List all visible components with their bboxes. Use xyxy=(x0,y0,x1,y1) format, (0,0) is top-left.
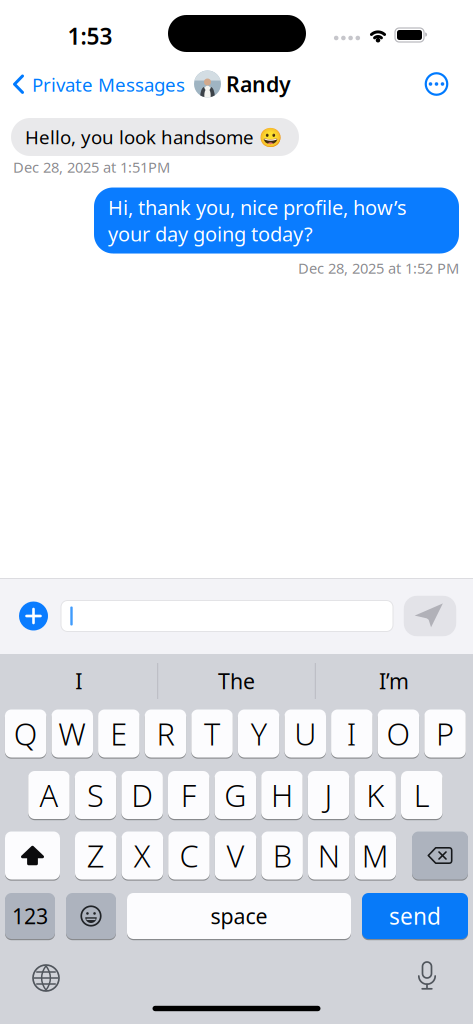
button[interactable]: J xyxy=(308,770,349,820)
staticText: Y xyxy=(251,713,267,754)
button[interactable] xyxy=(423,71,449,97)
staticText: Hello, you look handsome 😀 xyxy=(25,125,282,149)
button[interactable]: I’m xyxy=(319,661,469,701)
button[interactable]: send xyxy=(362,892,468,940)
button[interactable]: 123 xyxy=(5,892,55,940)
button[interactable]: K xyxy=(354,770,396,820)
staticText: I xyxy=(347,713,357,754)
staticText: F xyxy=(181,775,197,815)
button[interactable]: The xyxy=(161,661,311,701)
button[interactable] xyxy=(412,830,468,880)
staticText: D xyxy=(131,775,153,815)
staticText: Dec 28, 2025 at 1:52 PM xyxy=(298,258,459,278)
button[interactable]: D xyxy=(121,770,163,820)
button[interactable]: A xyxy=(28,770,70,820)
button[interactable]: I xyxy=(331,708,373,758)
button[interactable]: X xyxy=(122,830,163,880)
staticText: I’m xyxy=(379,667,409,695)
button[interactable] xyxy=(61,600,393,631)
button[interactable] xyxy=(66,892,116,940)
button[interactable]: G xyxy=(215,770,256,820)
button[interactable]: F xyxy=(168,770,209,820)
staticText: E xyxy=(110,713,127,754)
button[interactable] xyxy=(404,596,456,636)
staticText: N xyxy=(318,835,340,876)
staticText: X xyxy=(134,835,151,876)
button[interactable]: space xyxy=(127,892,351,940)
staticText: space xyxy=(210,902,267,930)
staticText: W xyxy=(58,713,86,754)
button[interactable]: C xyxy=(168,830,210,880)
button[interactable] xyxy=(5,830,60,880)
button[interactable] xyxy=(26,958,66,998)
staticText: O xyxy=(386,713,410,754)
staticText: P xyxy=(436,713,454,754)
button[interactable]: O xyxy=(378,708,419,758)
staticText: 1:53 xyxy=(67,21,112,51)
staticText: C xyxy=(179,835,198,876)
button[interactable]: N xyxy=(308,830,349,880)
button[interactable]: Randy xyxy=(194,69,294,99)
button[interactable]: Private Messages xyxy=(13,67,195,101)
button[interactable]: H xyxy=(261,770,303,820)
staticText: Z xyxy=(87,835,105,876)
button[interactable]: Y xyxy=(238,708,279,758)
staticText: J xyxy=(325,775,333,815)
staticText: T xyxy=(204,713,220,754)
button[interactable]: W xyxy=(51,708,93,758)
button[interactable]: I xyxy=(4,661,154,701)
staticText: G xyxy=(224,775,246,815)
button[interactable]: Q xyxy=(5,708,46,758)
button[interactable]: M xyxy=(355,830,396,880)
staticText: B xyxy=(273,835,292,876)
staticText: V xyxy=(227,835,245,876)
button[interactable] xyxy=(19,601,48,630)
button[interactable]: P xyxy=(424,708,466,758)
staticText: Hi, thank you, nice profile, how’s your … xyxy=(108,194,407,247)
staticText: Q xyxy=(14,713,38,754)
staticText: H xyxy=(271,775,293,815)
button[interactable]: T xyxy=(191,708,233,758)
staticText: A xyxy=(39,775,58,815)
staticText: Randy xyxy=(226,70,291,98)
staticText: R xyxy=(156,713,174,754)
staticText: send xyxy=(389,901,441,931)
staticText: S xyxy=(87,775,104,815)
button[interactable]: Z xyxy=(75,830,116,880)
button[interactable]: U xyxy=(284,708,326,758)
button[interactable]: B xyxy=(261,830,303,880)
staticText: Dec 28, 2025 at 1:51PM xyxy=(13,157,170,177)
button[interactable]: R xyxy=(145,708,186,758)
staticText: K xyxy=(366,775,384,815)
staticText: 123 xyxy=(12,902,48,930)
staticText: The xyxy=(218,667,255,695)
button[interactable]: V xyxy=(215,830,256,880)
staticText: I xyxy=(75,667,82,695)
staticText: U xyxy=(294,713,316,754)
button[interactable] xyxy=(407,956,447,996)
staticText: M xyxy=(362,835,389,876)
button[interactable]: E xyxy=(98,708,140,758)
staticText: L xyxy=(414,775,430,815)
button[interactable]: L xyxy=(401,770,442,820)
staticText: Private Messages xyxy=(32,72,185,97)
button[interactable]: S xyxy=(75,770,116,820)
